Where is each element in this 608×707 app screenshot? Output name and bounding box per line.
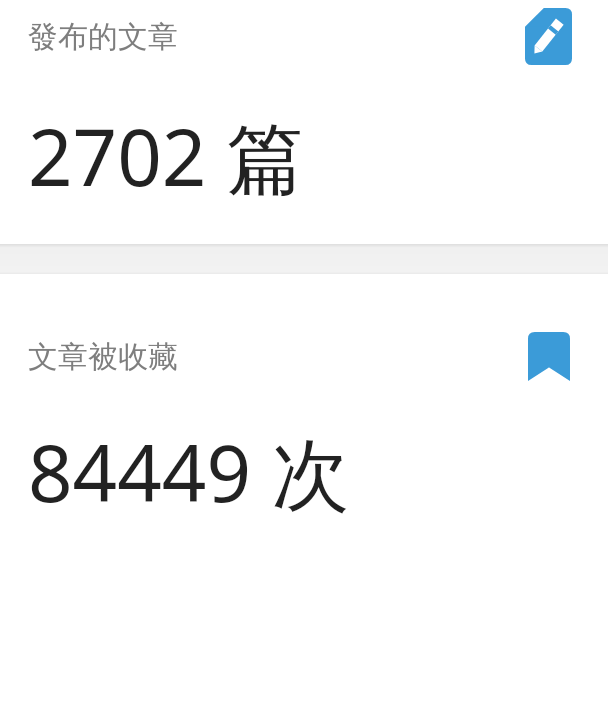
staticText: 2702 篇 — [28, 103, 305, 210]
staticText: 文章被收藏 — [28, 338, 178, 376]
staticText: 發布的文章 — [28, 18, 178, 56]
staticText: 84449 次 — [28, 419, 350, 526]
button[interactable]: 發布的文章 — [0, 0, 608, 244]
button[interactable]: Write article — [525, 8, 572, 65]
button[interactable]: Bookmarks — [528, 332, 570, 381]
button[interactable]: 文章被收藏 — [0, 274, 608, 707]
